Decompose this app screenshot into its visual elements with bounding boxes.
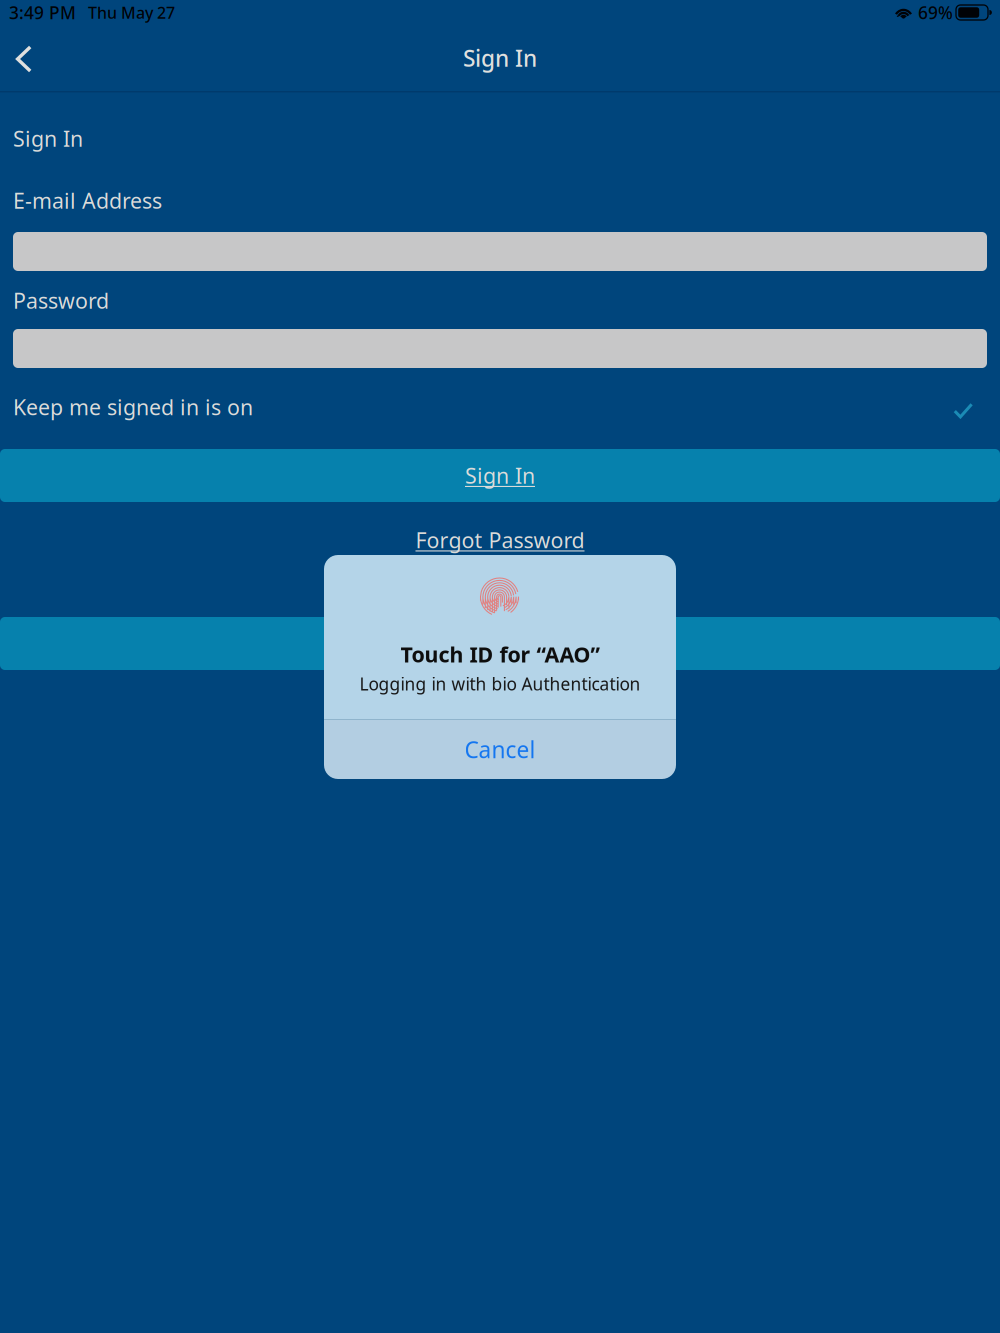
staticText: Keep me signed in is on [13,393,253,421]
staticText: 3:49 PM [9,1,76,24]
staticText: 69% [918,1,953,24]
staticText: Thu May 27 [88,2,175,23]
button[interactable]: Keep me signed in is on [13,391,987,423]
button[interactable]: Sign in with Touch ID [0,617,1000,670]
button[interactable]: Password [13,329,987,368]
staticText: Sign In [463,43,537,73]
staticText: Forgot Password [415,526,584,554]
staticText: Sign In [465,461,535,490]
staticText: Sign In [13,124,83,153]
staticText: Touch ID for “AAO” [400,640,599,668]
button[interactable]: Back [1,28,47,90]
staticText: E-mail Address [13,186,162,215]
button[interactable]: E-mail Address [13,232,987,271]
staticText: Logging in with bio Authentication [359,672,640,695]
button[interactable]: Cancel [324,720,676,779]
button[interactable]: Sign In [0,449,1000,502]
staticText: Cancel [464,734,535,764]
staticText: Password [13,286,109,315]
button[interactable]: Forgot Password [0,523,1000,557]
